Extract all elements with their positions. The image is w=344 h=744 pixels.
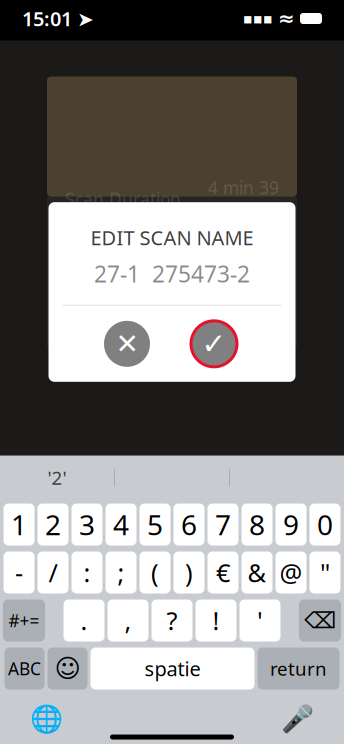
button[interactable]: &	[241, 551, 272, 593]
button[interactable]: 9	[275, 503, 306, 545]
staticText: 🌐	[30, 703, 63, 734]
button[interactable]: #+=	[3, 599, 45, 641]
button[interactable]: 5	[139, 503, 170, 545]
button[interactable]: Emoji	[47, 647, 87, 689]
button[interactable]: ,	[107, 599, 148, 641]
button[interactable]: .	[63, 599, 104, 641]
staticText: (	[151, 556, 159, 589]
button[interactable]: spatie	[90, 647, 254, 689]
button[interactable]: return	[257, 647, 339, 689]
staticText: &	[247, 556, 266, 589]
button[interactable]: @	[275, 551, 306, 593]
staticText: 4	[113, 506, 129, 543]
staticText: 9	[283, 506, 299, 543]
button[interactable]: '2'	[0, 455, 114, 499]
staticText: ✕	[115, 328, 138, 360]
staticText: .	[80, 604, 87, 637]
staticText: ⌫	[304, 608, 336, 633]
staticText: -	[15, 556, 23, 589]
staticText: 🎤	[281, 703, 314, 734]
staticText: Scan Duration	[65, 187, 181, 210]
button[interactable]: (	[139, 551, 170, 593]
button[interactable]: 4	[105, 503, 136, 545]
staticText: 5	[147, 506, 163, 543]
staticText: '2'	[47, 465, 66, 490]
button[interactable]: 8	[241, 503, 272, 545]
staticText: ☺	[54, 654, 80, 683]
staticText: ≈	[278, 7, 295, 30]
staticText: ABC	[8, 657, 41, 680]
staticText: 4 min 39 sec	[208, 176, 279, 222]
button[interactable]: 1	[3, 503, 34, 545]
staticText: :	[83, 556, 90, 589]
staticText: "	[320, 556, 330, 589]
button[interactable]: "	[309, 551, 340, 593]
button[interactable]: ?	[151, 599, 192, 641]
button[interactable]: 6	[173, 503, 204, 545]
staticText: ?	[166, 604, 177, 637]
button[interactable]: Change keyboard	[30, 703, 63, 734]
staticText: #+=	[8, 609, 39, 632]
staticText: ,	[124, 604, 131, 637]
button[interactable]: ABC	[4, 647, 44, 689]
button[interactable]: 0	[309, 503, 340, 545]
staticText: Detail Images	[65, 236, 178, 259]
staticText: @	[279, 556, 302, 589]
staticText: 0	[317, 506, 333, 543]
staticText: ✓	[201, 327, 226, 360]
button[interactable]: ;	[105, 551, 136, 593]
staticText: ▪▪▪	[243, 10, 273, 27]
button[interactable]: 3	[71, 503, 102, 545]
staticText: 6	[181, 506, 197, 543]
staticText: EDIT SCAN NAME	[90, 224, 253, 251]
button[interactable]: )	[173, 551, 204, 593]
staticText: spatie	[144, 655, 200, 682]
staticText: )	[185, 556, 193, 589]
button[interactable]: '	[239, 599, 280, 641]
button[interactable]: :	[71, 551, 102, 593]
staticText: 1	[11, 506, 27, 543]
staticText: €	[216, 556, 230, 589]
button[interactable]: 7	[207, 503, 238, 545]
staticText: 7	[215, 506, 231, 543]
button[interactable]: Dictate	[281, 703, 314, 734]
button[interactable]: €	[207, 551, 238, 593]
staticText: 27‑1 275473‑2	[94, 259, 250, 289]
staticText: 2	[45, 506, 61, 543]
staticText: 3	[79, 506, 95, 543]
button[interactable]: Confirm	[188, 318, 240, 370]
staticText: 8	[249, 506, 265, 543]
button[interactable]: Cancel	[104, 321, 150, 367]
button[interactable]: -	[3, 551, 34, 593]
staticText: return	[270, 656, 327, 681]
button[interactable]: Delete	[299, 599, 341, 641]
button[interactable]: !	[195, 599, 236, 641]
staticText: '	[257, 604, 263, 637]
staticText: !	[212, 604, 219, 637]
staticText: /	[48, 556, 57, 589]
button[interactable]: 2	[37, 503, 68, 545]
staticText: ;	[117, 556, 124, 589]
button[interactable]: /	[37, 551, 68, 593]
staticText: 15:01 ➤	[22, 5, 94, 32]
